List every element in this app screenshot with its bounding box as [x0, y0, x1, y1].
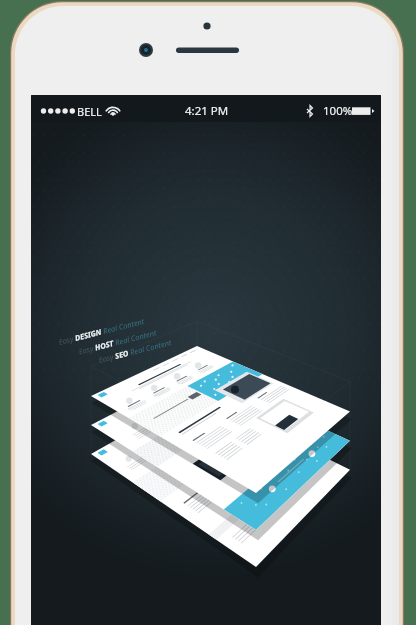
other: Phone mockup showing website templates: [0, 0, 416, 625]
